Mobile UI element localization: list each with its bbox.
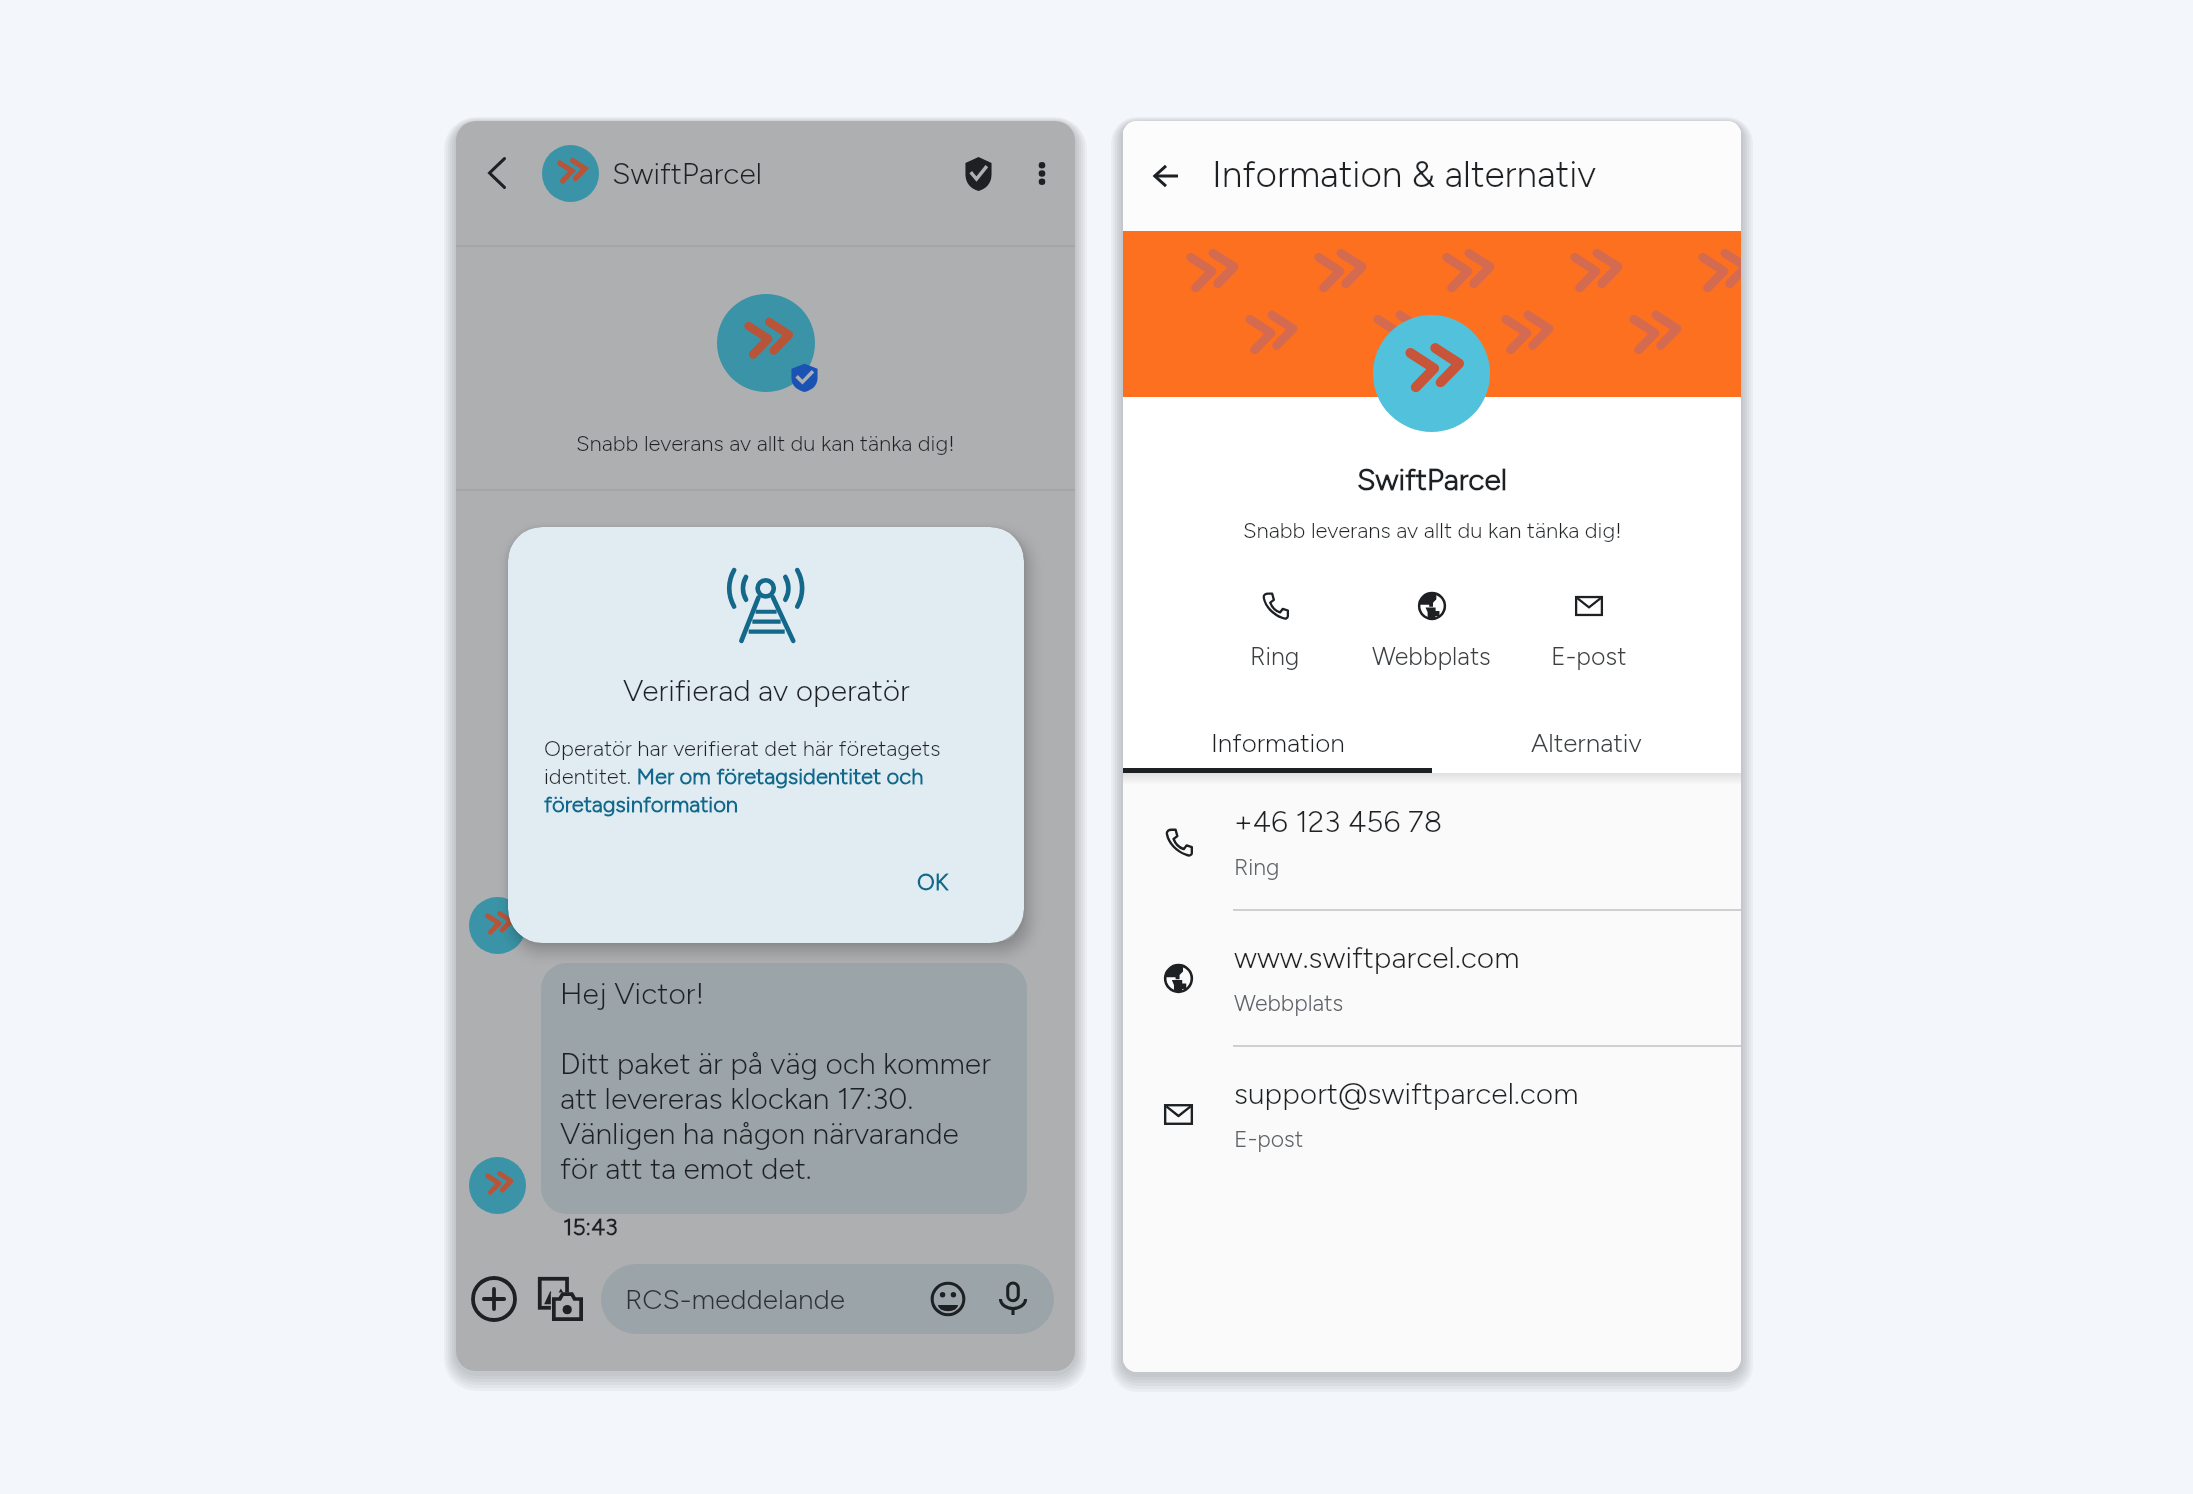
button[interactable]: +46 123 456 78: [1123, 775, 1741, 909]
button[interactable]: Webbplats: [1353, 592, 1510, 671]
button[interactable]: Send photo: [533, 1272, 587, 1326]
staticText: Ring: [1234, 853, 1280, 881]
staticText: Information: [1211, 727, 1345, 758]
staticText: Ring: [1250, 641, 1300, 671]
button[interactable]: Back: [1139, 150, 1191, 202]
button[interactable]: More options: [1016, 147, 1068, 199]
staticText: Information & alternativ: [1212, 152, 1597, 196]
staticText: Alternativ: [1531, 727, 1642, 758]
staticText: E-post: [1551, 641, 1627, 671]
button[interactable]: support@swiftparcel.com: [1123, 1047, 1741, 1181]
staticText: Snabb leverans av allt du kan tänka dig!: [576, 430, 955, 456]
staticText: RCS-meddelande: [625, 1282, 845, 1316]
staticText: SwiftParcel: [612, 155, 763, 191]
button[interactable]: Add attachment: [467, 1272, 521, 1326]
staticText: OK: [917, 868, 949, 896]
staticText: Webbplats: [1372, 641, 1491, 671]
staticText: 15:43: [563, 1213, 618, 1241]
staticText: Webbplats: [1234, 989, 1344, 1017]
staticText: Verifierad av operatör: [623, 672, 910, 708]
button[interactable]: OK: [905, 860, 961, 904]
staticText: www.swiftparcel.com: [1234, 939, 1520, 975]
staticText: E-post: [1234, 1125, 1304, 1153]
button[interactable]: Information: [1123, 722, 1432, 773]
button[interactable]: Verified business: [952, 147, 1004, 199]
staticText: Operatör har verifierat det här företage…: [544, 735, 962, 818]
staticText: +46 123 456 78: [1234, 803, 1443, 839]
staticText: support@swiftparcel.com: [1234, 1075, 1579, 1111]
button[interactable]: Back: [471, 147, 523, 199]
button[interactable]: www.swiftparcel.com: [1123, 911, 1741, 1045]
staticText: Snabb leverans av allt du kan tänka dig!: [1243, 517, 1622, 543]
button[interactable]: RCS-meddelande: [601, 1264, 1054, 1334]
button[interactable]: Alternativ: [1432, 722, 1741, 773]
staticText: Hej Victor! Ditt paket är på väg och kom…: [560, 975, 1001, 1186]
button[interactable]: Ring: [1197, 592, 1353, 671]
staticText: SwiftParcel: [1357, 461, 1508, 497]
button[interactable]: E-post: [1510, 592, 1667, 671]
